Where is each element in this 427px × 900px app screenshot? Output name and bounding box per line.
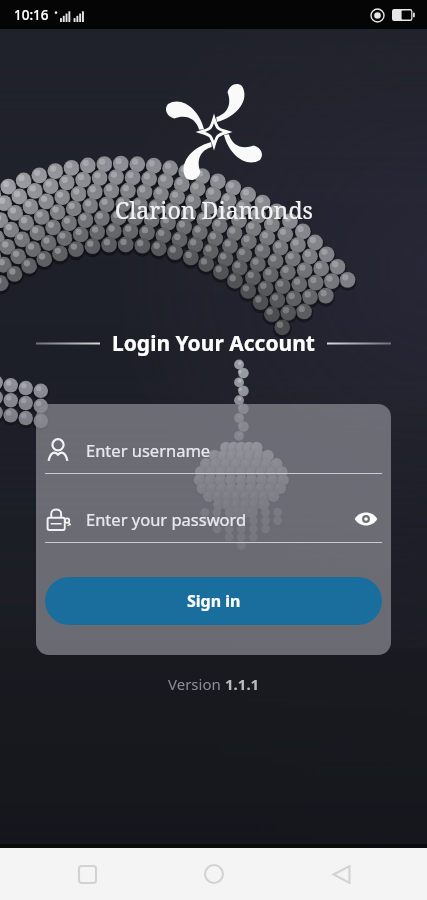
staticText: Enter your password <box>86 508 350 530</box>
staticText: Login Your Account <box>112 329 315 358</box>
staticText: Clarion Diamonds <box>115 194 313 225</box>
staticText: Sign in <box>187 590 241 612</box>
staticText: Enter username <box>86 439 211 461</box>
button[interactable]: Enter username <box>45 427 382 473</box>
button[interactable]: Recent apps <box>61 848 113 900</box>
staticText: 1.1.1 <box>225 674 260 694</box>
button[interactable]: Enter your password <box>45 496 382 542</box>
staticText: Version <box>168 674 225 694</box>
button[interactable]: Home <box>188 848 240 900</box>
staticText: 10:16 <box>14 6 49 24</box>
button[interactable]: Back <box>315 848 367 900</box>
button[interactable]: Sign in <box>45 577 382 625</box>
button[interactable]: Show password <box>350 503 382 535</box>
